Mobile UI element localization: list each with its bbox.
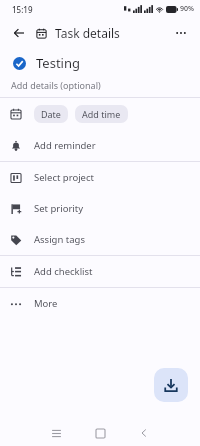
button[interactable]: Add details (optional) xyxy=(11,79,101,91)
staticText: More xyxy=(34,297,58,310)
staticText: Select project xyxy=(34,171,94,184)
staticText: Date xyxy=(41,108,61,120)
button[interactable]: Select project xyxy=(0,162,200,193)
button[interactable]: Mark complete xyxy=(10,54,28,72)
button[interactable]: Back xyxy=(10,24,28,42)
staticText: 15:19 xyxy=(12,4,33,15)
button[interactable]: Add reminder xyxy=(0,130,200,161)
button[interactable]: Date xyxy=(34,105,68,123)
staticText: Add reminder xyxy=(34,139,96,152)
button[interactable]: Save task xyxy=(154,368,188,402)
staticText: 90% xyxy=(180,4,194,14)
staticText: Assign tags xyxy=(34,233,85,246)
button[interactable]: Add time xyxy=(75,105,128,123)
button[interactable]: Recents xyxy=(41,420,71,446)
button[interactable]: Home xyxy=(85,420,115,446)
button[interactable]: More xyxy=(0,288,200,319)
button[interactable]: Set priority xyxy=(0,193,200,224)
staticText: Add checklist xyxy=(34,265,93,278)
staticText: Task details xyxy=(55,25,120,41)
button[interactable]: Assign tags xyxy=(0,224,200,255)
button[interactable]: Back xyxy=(129,420,159,446)
button[interactable]: More options xyxy=(172,24,190,42)
staticText: Set priority xyxy=(34,202,84,215)
button[interactable]: Add checklist xyxy=(0,256,200,287)
staticText: Add time xyxy=(82,108,121,120)
staticText: Testing xyxy=(36,54,80,72)
